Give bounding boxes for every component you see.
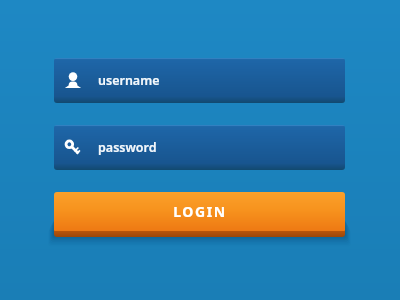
staticText: username [98, 72, 160, 89]
button[interactable]: username [54, 58, 345, 103]
staticText: LOGIN [173, 202, 227, 221]
button[interactable]: password [54, 125, 345, 170]
staticText: password [98, 139, 157, 156]
button[interactable]: LOGIN [54, 192, 345, 237]
